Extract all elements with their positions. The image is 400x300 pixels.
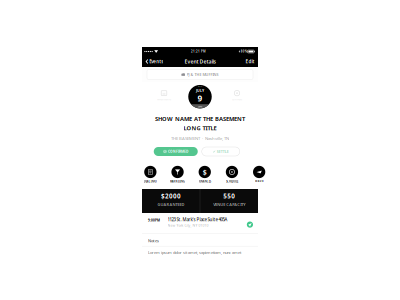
staticText: LONG TITLE — [183, 124, 216, 132]
staticText: Event Details — [184, 58, 215, 65]
staticText: SCHEDULE — [226, 180, 238, 183]
staticText: $2000 — [161, 192, 181, 200]
staticText: $ — [203, 167, 207, 177]
staticText: THU — [197, 85, 202, 88]
button[interactable]: MARKETING — [164, 165, 191, 184]
staticText: Notes — [148, 238, 159, 243]
staticText: TRAVEL — [255, 180, 264, 183]
button[interactable]: FINANCES — [191, 165, 218, 184]
button[interactable]: SCHEDULE — [218, 165, 245, 184]
staticText: New York City, NY 01010 — [167, 223, 208, 228]
staticText: 80% — [241, 50, 247, 53]
staticText: 21:21 PM — [191, 50, 206, 53]
button[interactable]: 9:00PM — [142, 213, 258, 234]
staticText: DEAL INFO — [144, 180, 157, 183]
staticText: ATTACHMENTS — [157, 98, 171, 101]
staticText: CONTACTS — [232, 98, 242, 101]
staticText: 9:00PM — [148, 218, 160, 223]
staticText: CONFIRMED — [168, 149, 188, 154]
staticText: Events — [149, 58, 163, 64]
staticText: PJ & THE MUFFINS — [187, 72, 219, 77]
button[interactable]: CONTACTS — [226, 88, 248, 106]
button[interactable]: Events — [142, 56, 167, 67]
staticText: GUARANTEED — [157, 202, 184, 207]
staticText: Lorem ipsum dolor sit amet, sapien etiam… — [148, 250, 241, 255]
staticText: FINANCES — [199, 180, 211, 183]
button[interactable]: CONFIRMED — [154, 147, 198, 156]
button[interactable]: ATTACHMENTS — [153, 88, 175, 106]
staticText: JULY — [196, 88, 204, 93]
staticText: SETTLE — [217, 149, 229, 154]
staticText: 9 — [197, 93, 202, 104]
button[interactable]: DEAL INFO — [137, 165, 164, 184]
staticText: 550 — [223, 192, 235, 200]
staticText: 2015 — [198, 105, 202, 108]
staticText: MARKETING — [170, 180, 185, 183]
staticText: Edit — [245, 58, 254, 65]
staticText: 1123 St. Mark's Place Suite 405A — [167, 216, 227, 222]
button[interactable]: SETTLE — [202, 147, 240, 156]
staticText: VENUE CAPACITY — [213, 202, 245, 207]
staticText: THE BASEMENT · Nashville, TN — [171, 135, 229, 141]
button[interactable]: TRAVEL — [246, 165, 273, 184]
staticText: SHOW NAME AT THE BASEMENT — [155, 115, 245, 123]
button[interactable]: Edit — [242, 56, 258, 67]
